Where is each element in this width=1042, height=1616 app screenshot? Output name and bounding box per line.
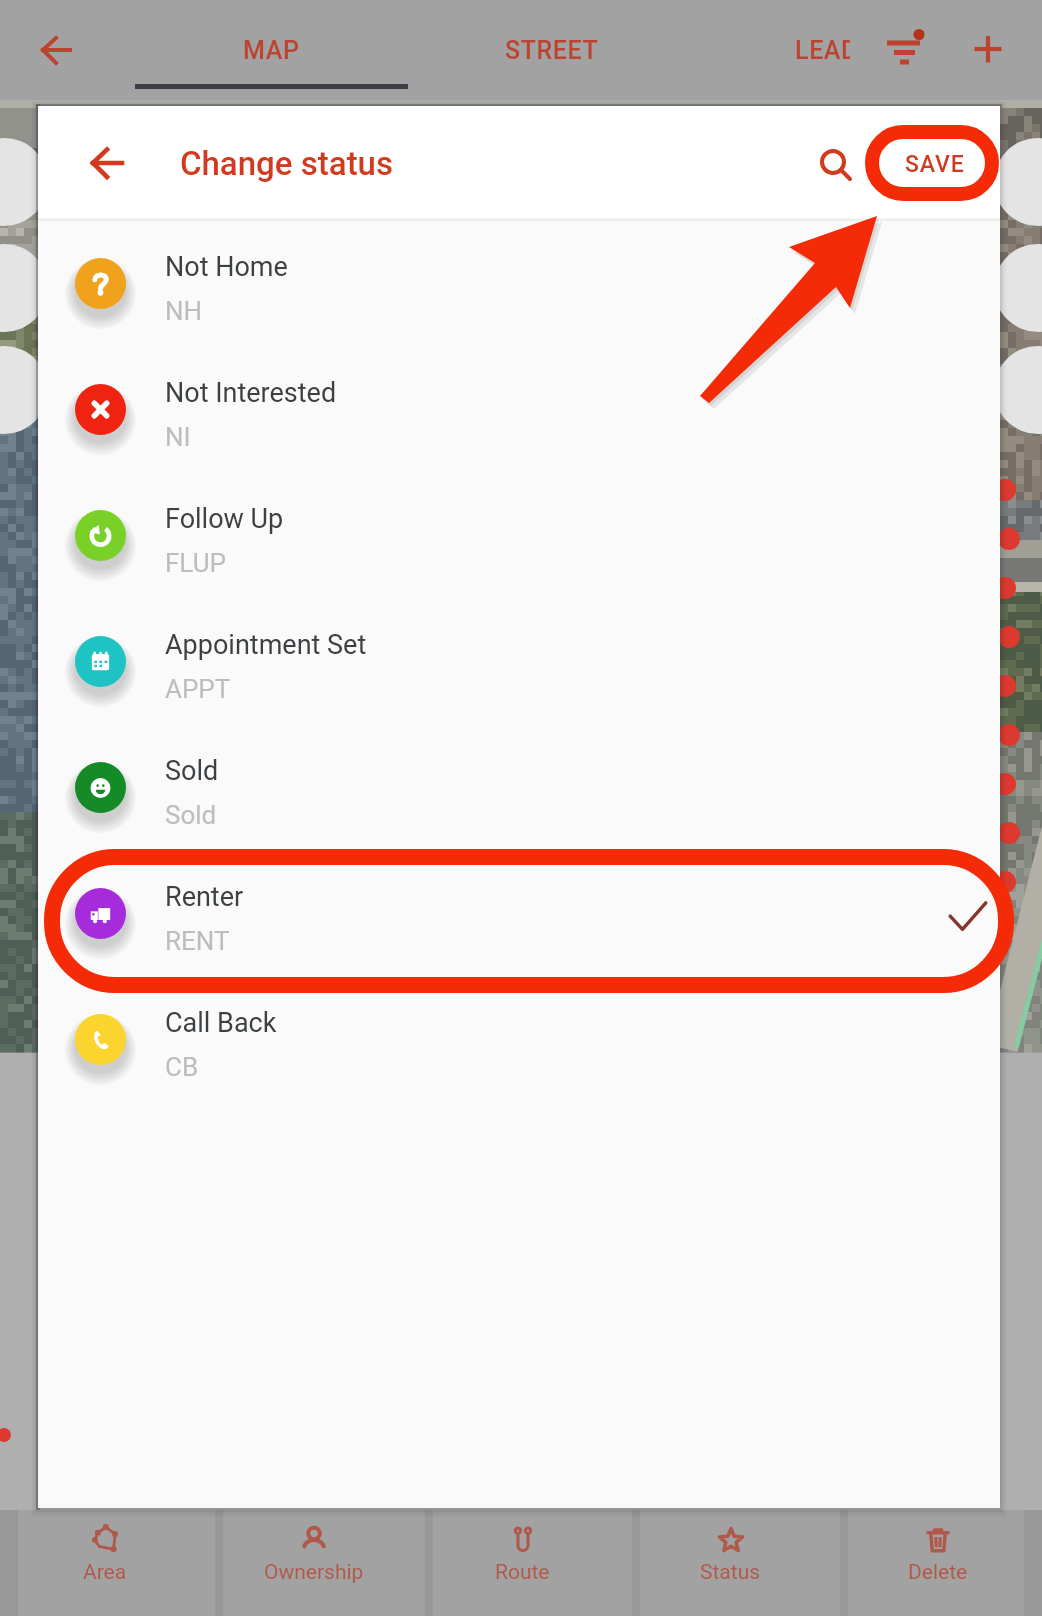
button[interactable]: Appointment Set [38,599,1000,725]
button[interactable]: STREET [415,0,688,100]
staticText: SAVE [905,151,965,178]
staticText: Status [700,1560,761,1585]
button[interactable]: Area [0,1510,209,1616]
staticText: APPT [165,674,231,704]
button[interactable]: Call Back [38,977,1000,1103]
staticText: STREET [505,36,599,65]
staticText: LEAD [795,36,850,65]
staticText: Change status [180,144,394,183]
staticText: RENT [165,926,230,956]
button[interactable]: SAVE [892,130,978,198]
button[interactable]: Status [626,1510,834,1616]
staticText: Route [495,1560,550,1585]
button[interactable]: Back [26,16,94,84]
button[interactable]: Search [801,130,869,198]
button[interactable]: MAP [135,0,408,100]
staticText: Ownership [264,1560,364,1585]
staticText: Delete [908,1560,968,1585]
staticText: Not Interested [165,377,337,409]
staticText: Renter [165,881,244,913]
button[interactable]: Not Interested [38,347,1000,473]
staticText: Not Home [165,251,288,283]
button[interactable]: Renter [38,851,1000,977]
staticText: Area [83,1560,127,1585]
staticText: MAP [243,36,300,65]
staticText: CB [165,1052,199,1082]
button[interactable]: Ownership [209,1510,418,1616]
staticText: Follow Up [165,503,284,535]
staticText: Appointment Set [165,629,367,661]
button[interactable]: LEAD [695,0,850,100]
button[interactable]: Route [418,1510,626,1616]
button[interactable]: Add [954,15,1022,83]
button[interactable]: Back [72,126,146,200]
staticText: Call Back [165,1007,277,1039]
staticText: FLUP [165,548,226,578]
button[interactable]: Follow Up [38,473,1000,599]
staticText: Sold [165,755,219,787]
staticText: NI [165,422,191,452]
staticText: Sold [165,800,217,830]
button[interactable]: Filter [870,18,938,86]
button[interactable]: Not Home [38,221,1000,347]
button[interactable]: Sold [38,725,1000,851]
staticText: NH [165,296,203,326]
button[interactable]: Delete [834,1510,1042,1616]
